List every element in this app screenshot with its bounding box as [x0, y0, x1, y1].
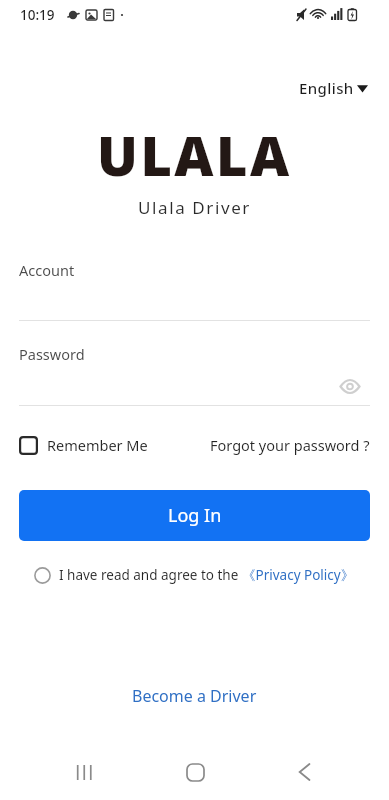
staticText: Forgot your password ?	[210, 435, 370, 455]
button[interactable]: Password	[0, 333, 389, 406]
staticText: ULALA	[97, 118, 292, 192]
staticText: Remember Me	[47, 435, 148, 455]
button[interactable]: Account	[0, 249, 389, 321]
button[interactable]: Forgot your password ?	[210, 435, 370, 455]
button[interactable]: Recent apps	[57, 745, 111, 799]
staticText: Password	[19, 344, 85, 364]
button[interactable]: Become a Driver	[120, 681, 269, 711]
staticText: Log In	[168, 503, 222, 528]
staticText: 《Privacy Policy》	[242, 566, 355, 584]
button[interactable]: I have read and agree to the	[34, 563, 242, 587]
staticText: Ulala Driver	[138, 196, 251, 219]
button[interactable]: English	[297, 74, 370, 102]
button[interactable]: Back	[278, 745, 332, 799]
staticText: 10:19	[20, 6, 55, 24]
staticText: I have read and agree to the	[59, 566, 242, 584]
button[interactable]: Show password	[334, 370, 366, 402]
staticText: English	[299, 78, 354, 98]
button[interactable]: Remember Me	[19, 435, 148, 455]
staticText: Account	[19, 260, 75, 280]
staticText: Become a Driver	[132, 685, 257, 707]
button[interactable]: Home	[168, 745, 222, 799]
button[interactable]: Log In	[19, 490, 370, 541]
button[interactable]: 《Privacy Policy》	[242, 563, 355, 587]
